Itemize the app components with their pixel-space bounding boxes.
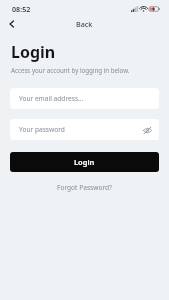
staticText: Login bbox=[11, 41, 56, 63]
staticText: Access your account by logging in below. bbox=[11, 66, 130, 74]
button[interactable]: Forgot Password? bbox=[51, 181, 118, 194]
button[interactable]: Show password bbox=[140, 123, 154, 137]
button[interactable]: Your email address... bbox=[10, 88, 159, 109]
button[interactable]: Login bbox=[10, 152, 159, 172]
staticText: Your email address... bbox=[19, 94, 84, 103]
button[interactable]: Your password bbox=[10, 119, 159, 140]
staticText: Back bbox=[76, 19, 93, 29]
staticText: 08:52 bbox=[12, 4, 31, 14]
staticText: Forgot Password? bbox=[57, 183, 112, 192]
staticText: Login bbox=[74, 157, 95, 167]
staticText: Your password bbox=[19, 125, 65, 134]
button[interactable]: Back bbox=[5, 17, 19, 31]
